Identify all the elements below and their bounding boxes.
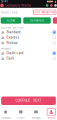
staticText: CONTINUE · NEXT bbox=[15, 99, 41, 102]
button[interactable]: Menu bbox=[54, 4, 57, 7]
staticText: PAYMENT bbox=[1, 47, 12, 50]
staticText: Company Name bbox=[5, 3, 31, 7]
staticText: Dashboard bbox=[1, 117, 11, 119]
staticText: Credit card bbox=[6, 51, 23, 55]
staticText: Messages bbox=[32, 117, 41, 119]
button[interactable]: CONTINUE · NEXT bbox=[1, 96, 56, 105]
button[interactable]: Standard bbox=[0, 30, 57, 35]
staticText: Profile bbox=[48, 117, 55, 119]
staticText: Delivered bbox=[30, 19, 44, 22]
button[interactable]: Credit card bbox=[0, 51, 57, 56]
button[interactable]: Active bbox=[1, 17, 21, 24]
button[interactable]: Messages bbox=[28, 107, 44, 120]
button[interactable]: Profile bbox=[44, 107, 57, 120]
button[interactable]: Status bbox=[46, 4, 48, 7]
staticText: DELIVERY METHOD bbox=[1, 26, 24, 29]
staticText: Express bbox=[6, 36, 19, 39]
staticText: Active bbox=[6, 19, 15, 22]
button[interactable]: Orders bbox=[13, 107, 28, 120]
staticText: Select one bbox=[1, 11, 18, 14]
button[interactable]: Delivered bbox=[23, 17, 51, 24]
button[interactable]: Cash bbox=[0, 56, 57, 61]
staticText: Standard bbox=[6, 30, 20, 34]
button[interactable]: Pickup bbox=[0, 40, 57, 45]
button[interactable]: Express bbox=[0, 35, 57, 40]
staticText: ●●● ▮ bbox=[47, 0, 56, 3]
button[interactable]: Notifications bbox=[50, 4, 53, 7]
button[interactable]: Add new address bbox=[34, 10, 56, 15]
button[interactable]: Account bbox=[0, 4, 4, 7]
button[interactable]: More filters bbox=[53, 17, 57, 24]
staticText: Cash bbox=[6, 57, 14, 60]
staticText: Add new address bbox=[34, 11, 55, 14]
button[interactable]: Dashboard bbox=[0, 107, 13, 120]
staticText: 9:41 bbox=[1, 0, 7, 3]
staticText: Orders bbox=[17, 117, 24, 119]
staticText: Pickup bbox=[6, 41, 17, 45]
